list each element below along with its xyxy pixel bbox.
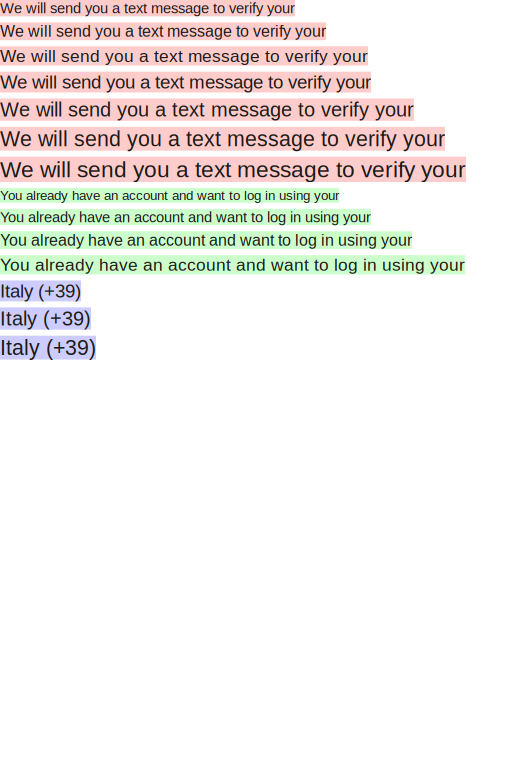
staticText: You already have an account and want to … <box>0 231 412 249</box>
staticText: We will send you a text message to verif… <box>0 98 414 121</box>
staticText: You already have an account and want to … <box>0 188 339 203</box>
staticText: Italy (+39) <box>0 280 81 301</box>
staticText: You already have an account and want to … <box>0 255 465 274</box>
staticText: We will send you a text message to verif… <box>0 46 368 66</box>
staticText: Italy (+39) <box>0 336 96 359</box>
staticText: We will send you a text message to verif… <box>0 0 295 16</box>
staticText: We will send you a text message to verif… <box>0 72 371 92</box>
staticText: We will send you a text message to verif… <box>0 22 326 40</box>
staticText: We will send you a text message to verif… <box>0 157 466 182</box>
staticText: Italy (+39) <box>0 307 91 330</box>
staticText: You already have an account and want to … <box>0 209 371 225</box>
staticText: We will send you a text message to verif… <box>0 127 445 151</box>
